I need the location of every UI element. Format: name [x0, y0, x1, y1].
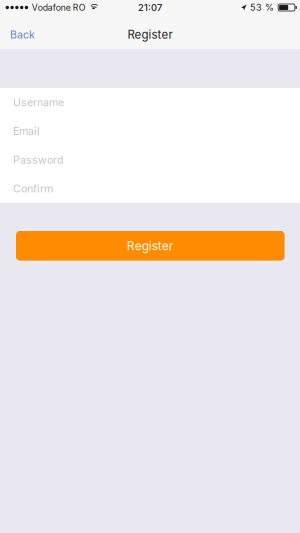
button[interactable]: Confirm	[0, 174, 300, 203]
staticText: 53 %	[250, 2, 274, 13]
staticText: Vodafone RO	[32, 2, 86, 13]
staticText: Register	[127, 238, 174, 253]
staticText: Username	[13, 96, 64, 109]
staticText: Back	[10, 28, 35, 41]
button[interactable]: Password	[0, 145, 300, 174]
button[interactable]: Back	[0, 20, 60, 49]
button[interactable]: Register	[16, 231, 285, 261]
staticText: 21:07	[138, 2, 162, 13]
staticText: Confirm	[13, 182, 53, 195]
button[interactable]: Email	[0, 117, 300, 146]
staticText: Password	[13, 153, 64, 166]
staticText: Register	[127, 28, 172, 41]
button[interactable]: Username	[0, 88, 300, 117]
staticText: Email	[13, 125, 40, 138]
